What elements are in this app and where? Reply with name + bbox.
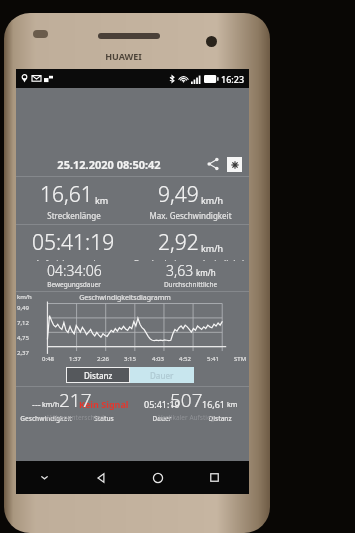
staticText: 2,37 [17,349,29,357]
staticText: 16,61 [202,398,226,410]
staticText: km/h [196,267,216,278]
staticText: 2:26 [97,355,109,363]
staticText: Status [94,414,114,423]
staticText: HUAWEI [105,50,142,62]
staticText: 7,12 [17,319,29,327]
staticText: Höhenunterschied [47,413,104,422]
button[interactable]: 507 [154,387,219,422]
button[interactable]: 2,92 [132,225,249,261]
staticText: Bewegungsdauer [47,280,101,289]
button[interactable]: 04:34:06 [16,261,132,289]
staticText: 9,49 [17,304,29,312]
staticText: Dauer [150,370,174,381]
button[interactable]: 3,63 [132,261,249,291]
button[interactable]: 16,61 [191,390,249,423]
staticText: 3:15 [124,355,136,363]
staticText: Kein Signal [79,398,129,410]
button[interactable]: Startbildschirm [129,461,186,494]
staticText: km/h [42,400,60,410]
staticText: Geschwindigkeit [20,414,72,423]
button[interactable]: 16,61 [16,177,132,221]
staticText: --- [32,398,41,410]
staticText: 507 [170,387,203,413]
button[interactable]: Ausblenden [16,461,72,494]
staticText: Streckenlänge [47,210,101,221]
staticText: 5:41 [207,355,219,363]
staticText: Distanz [208,414,232,423]
button[interactable]: Dauer [130,367,194,383]
staticText: Durchschnittliche Bewegungsgeschwin... [134,280,247,291]
staticText: 217 [59,387,92,413]
staticText: km/h [17,293,32,301]
staticText: km/h [201,242,224,254]
staticText: 4:03 [152,355,164,363]
button[interactable]: 217 [45,387,105,422]
staticText: STM [234,355,247,363]
staticText: 9,49 [158,180,199,209]
staticText: Distanz [84,370,113,381]
button[interactable]: Distanz [66,367,130,383]
staticText: km [227,400,238,410]
staticText: Dauer [152,414,172,423]
staticText: 1:37 [69,355,81,363]
button[interactable]: 05:41:19 [133,390,191,423]
button[interactable]: Geschwindigkeitsdiagramm [16,292,249,364]
button[interactable]: Übersicht [186,461,243,494]
staticText: Aufzeichnungsdauer [35,258,113,261]
staticText: 05:41:19 [32,228,115,257]
button[interactable]: Zurück [72,461,129,494]
staticText: 04:34:06 [47,261,102,280]
button[interactable]: 05:41:19 [16,225,132,261]
staticText: 25.12.2020 08:50:42 [57,157,161,172]
button[interactable]: --- [16,390,75,423]
button[interactable]: Teilen [205,156,221,172]
staticText: km/h [201,194,224,206]
staticText: 16,61 [40,180,93,209]
staticText: 16:23 [221,73,245,85]
staticText: 3,63 [166,261,194,280]
staticText: Vertikaler Aufstieg [158,413,215,422]
staticText: 0:48 [42,355,54,363]
staticText: Geschwindigkeitsdiagramm [79,293,171,303]
button[interactable]: 9,49 [132,177,249,221]
button[interactable]: Exportieren [227,157,242,172]
button[interactable]: Kein Signal [75,390,133,423]
staticText: Durchschnittsgeschwindigkeit [134,258,247,261]
staticText: 05:41:19 [144,398,180,410]
staticText: 2,92 [158,228,199,257]
staticText: km [95,194,109,206]
staticText: Max. Geschwindigkeit [149,210,232,221]
staticText: 4,75 [17,334,29,342]
staticText: 4:52 [179,355,191,363]
